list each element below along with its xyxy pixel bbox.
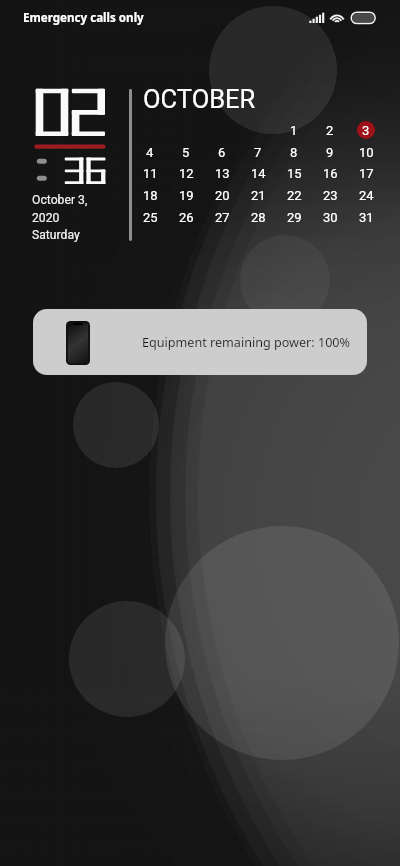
staticText: 21 [251,188,266,203]
staticText: Equipment remaining power: 100% [142,334,351,351]
staticText: 26 [179,210,194,225]
staticText: 4 [146,145,154,160]
staticText: 2 [326,123,334,138]
staticText: 30 [323,210,338,225]
staticText: 28 [251,210,266,225]
staticText: 1 [290,123,298,138]
staticText: 19 [179,188,194,203]
button[interactable]: Equipment remaining power: 100% [33,309,367,375]
staticText: 14 [251,166,266,181]
staticText: Emergency calls only [23,10,144,26]
staticText: 2020 [32,211,60,225]
staticText: 22 [287,188,302,203]
staticText: 24 [359,188,374,203]
staticText: 10 [359,145,374,160]
staticText: 8 [290,145,298,160]
staticText: 20 [215,188,230,203]
staticText: 15 [287,166,302,181]
staticText: 27 [215,210,230,225]
staticText: 23 [323,188,338,203]
staticText: 13 [215,166,230,181]
staticText: October 3, [32,193,88,207]
staticText: 29 [287,210,302,225]
staticText: 12 [179,166,194,181]
staticText: 18 [143,188,158,203]
staticText: 6 [218,145,226,160]
staticText: 31 [359,210,374,225]
staticText: 3 [362,123,370,138]
staticText: Saturday [32,228,80,242]
staticText: 7 [254,145,262,160]
staticText: 25 [143,210,158,225]
staticText: 9 [326,145,334,160]
staticText: OCTOBER [143,84,256,114]
staticText: 5 [182,145,190,160]
staticText: 16 [323,166,338,181]
staticText: 11 [143,166,158,181]
staticText: 17 [359,166,374,181]
